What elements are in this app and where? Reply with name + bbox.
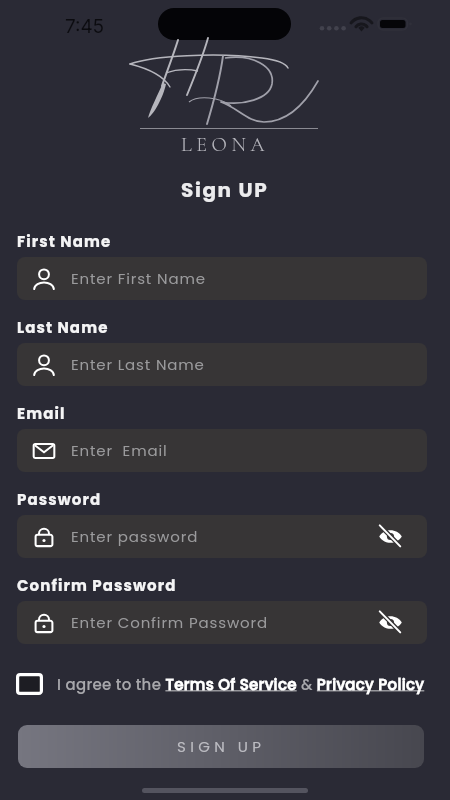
staticText: Enter Last Name: [71, 354, 205, 375]
button[interactable]: I agree to the Terms Of Service & Privac…: [57, 674, 425, 695]
staticText: LEONA: [181, 133, 270, 157]
staticText: Confirm Password: [17, 575, 177, 596]
staticText: Password: [17, 489, 102, 510]
button[interactable]: Enter First Name: [17, 257, 427, 300]
staticText: SIGN UP: [177, 736, 266, 757]
button[interactable]: Enter password: [17, 515, 427, 558]
staticText: Sign UP: [181, 176, 269, 204]
button[interactable]: Enter Last Name: [17, 343, 427, 386]
button[interactable]: Show password: [369, 601, 412, 644]
staticText: 7:45: [65, 15, 105, 38]
button[interactable]: I agree to the Terms Of Service: [15, 672, 43, 696]
staticText: Enter Confirm Password: [71, 612, 268, 633]
button[interactable]: Enter Confirm Password: [17, 601, 427, 644]
staticText: Enter password: [71, 526, 199, 547]
staticText: Email: [17, 403, 66, 424]
staticText: Enter First Name: [71, 268, 206, 289]
button[interactable]: Enter Email: [17, 429, 427, 472]
button[interactable]: Show password: [369, 515, 412, 558]
button[interactable]: SIGN UP: [18, 725, 424, 768]
staticText: Enter Email: [71, 440, 168, 461]
staticText: First Name: [17, 231, 112, 252]
staticText: Last Name: [17, 317, 109, 338]
